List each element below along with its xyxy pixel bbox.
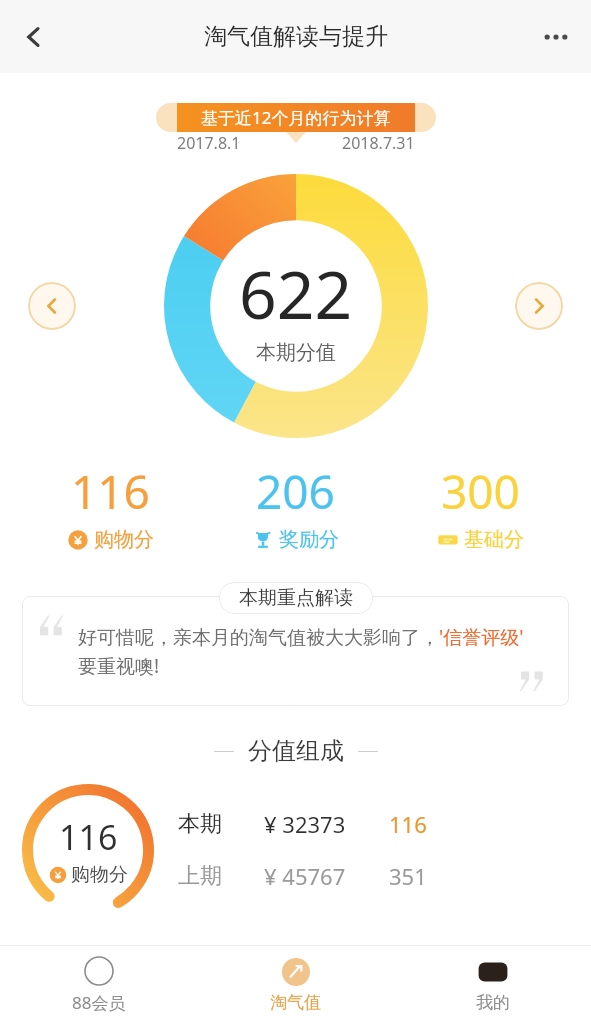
button[interactable]: More options [531, 12, 581, 62]
button[interactable]: 300 [388, 460, 573, 552]
staticText: 好可惜呢，亲本月的淘气值被大大影响了，'信誉评级' 要重视噢! [78, 624, 543, 679]
staticText: 奖励分 [279, 527, 339, 552]
staticText: 300 [441, 460, 520, 523]
staticText: 116 [59, 814, 118, 860]
staticText: 本期分值 [256, 340, 336, 365]
button[interactable]: Next [515, 282, 563, 330]
staticText: 本期 [178, 810, 264, 838]
staticText: 我的 [476, 992, 510, 1013]
staticText: 2017.8.1 [177, 132, 241, 154]
staticText: 分值组成 [248, 736, 344, 766]
button[interactable]: 116 [18, 460, 203, 552]
button[interactable]: Back [8, 11, 60, 63]
staticText: 上期 [178, 862, 264, 890]
button[interactable]: More [394, 945, 591, 1024]
staticText: 116 [389, 809, 427, 839]
staticText: 351 [389, 861, 427, 891]
staticText: ¥ 45767 [264, 861, 389, 891]
staticText: 购物分 [94, 527, 154, 552]
staticText: 淘气值解读与提升 [204, 22, 388, 51]
staticText: ¥ 32373 [264, 809, 389, 839]
staticText: 622 [239, 248, 353, 338]
staticText: 88会员 [72, 991, 126, 1014]
staticText: 116 [71, 460, 150, 523]
staticText: 淘气值 [270, 992, 321, 1013]
staticText: 2018.7.31 [342, 132, 415, 154]
staticText: 基础分 [464, 527, 524, 552]
staticText: 本期重点解读 [239, 586, 353, 610]
button[interactable]: 206 [203, 460, 388, 552]
button[interactable]: Previous [28, 282, 76, 330]
staticText: 206 [256, 460, 335, 523]
staticText: 基于近12个月的行为计算 [201, 106, 391, 129]
staticText: 购物分 [71, 863, 128, 887]
button[interactable]: 淘气值 [197, 945, 394, 1024]
button[interactable]: 88会员 [0, 945, 197, 1024]
